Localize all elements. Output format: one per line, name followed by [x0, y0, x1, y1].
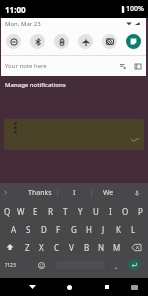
staticText: U: [93, 206, 99, 217]
button[interactable]: We: [92, 183, 125, 202]
staticText: H: [86, 224, 92, 235]
other: Notification settings: [135, 64, 141, 69]
staticText: Thanks: [28, 188, 52, 198]
staticText: T: [63, 206, 68, 217]
button[interactable]: Enter: [128, 259, 139, 270]
button[interactable]: More suggestions: [0, 183, 23, 202]
button[interactable]: ?123: [1, 256, 19, 274]
button[interactable]: X: [34, 238, 49, 256]
button[interactable]: H: [81, 220, 96, 238]
button[interactable]: Y: [73, 202, 88, 220]
button[interactable]: Your note here: [5, 56, 141, 76]
staticText: J: [102, 224, 105, 235]
button[interactable]: Do not disturb: [6, 34, 21, 49]
button[interactable]: Manage notifications: [0, 78, 148, 92]
staticText: Q: [4, 206, 11, 217]
staticText: S: [26, 224, 31, 235]
staticText: ?123: [5, 262, 16, 269]
staticText: Mon, Mar 23: [5, 20, 41, 28]
button[interactable]: Bluetooth: [30, 34, 45, 49]
staticText: .: [115, 260, 118, 271]
staticText: I: [73, 188, 76, 198]
staticText: M: [113, 242, 121, 253]
staticText: D: [41, 224, 47, 235]
staticText: F: [56, 224, 61, 235]
button[interactable]: S: [21, 220, 36, 238]
button[interactable]: Airplane mode: [78, 34, 93, 49]
other: Reply: [120, 63, 126, 69]
staticText: X: [39, 242, 44, 253]
button[interactable]: Thanks: [23, 183, 57, 202]
button[interactable]: Emoji: [33, 256, 49, 274]
button[interactable]: D: [36, 220, 51, 238]
button[interactable]: Hide keyboard: [22, 278, 42, 296]
staticText: G: [71, 224, 77, 235]
staticText: B: [84, 242, 90, 253]
button[interactable]: K: [111, 220, 126, 238]
button[interactable]: Home: [59, 278, 79, 296]
staticText: Z: [25, 242, 30, 253]
button[interactable]: N: [94, 238, 109, 256]
button[interactable]: G: [66, 220, 81, 238]
staticText: 11:00: [5, 4, 26, 15]
button[interactable]: C: [49, 238, 64, 256]
staticText: C: [54, 242, 60, 253]
staticText: We: [103, 188, 114, 198]
button[interactable]: Notes: [126, 34, 141, 49]
button[interactable]: Q: [0, 202, 14, 220]
staticText: P: [138, 206, 143, 217]
button[interactable]: Z: [20, 238, 34, 256]
button[interactable]: F: [51, 220, 66, 238]
button[interactable]: U: [88, 202, 103, 220]
button[interactable]: L: [126, 220, 141, 238]
button[interactable]: Backspace: [124, 238, 148, 256]
button[interactable]: Voice input: [125, 183, 148, 202]
staticText: 100%: [126, 4, 144, 14]
staticText: V: [69, 242, 74, 253]
button[interactable]: Battery saver: [54, 34, 69, 49]
staticText: E: [33, 206, 38, 217]
staticText: I: [109, 206, 112, 217]
button[interactable]: O: [118, 202, 133, 220]
button[interactable]: Cast screen: [102, 34, 117, 49]
button[interactable]: A: [7, 220, 21, 238]
staticText: Y: [78, 206, 83, 217]
button[interactable]: T: [58, 202, 73, 220]
staticText: W: [17, 206, 25, 217]
staticText: Manage notifications: [5, 81, 66, 89]
staticText: Your note here: [5, 62, 47, 70]
button[interactable]: I: [103, 202, 118, 220]
staticText: N: [98, 242, 105, 253]
button[interactable]: J: [96, 220, 111, 238]
button[interactable]: W: [14, 202, 28, 220]
staticText: A: [11, 224, 17, 235]
button[interactable]: Recents: [97, 278, 117, 296]
button[interactable]: .: [110, 256, 122, 274]
button[interactable]: R: [43, 202, 58, 220]
button[interactable]: M: [109, 238, 124, 256]
button[interactable]: P: [133, 202, 148, 220]
staticText: R: [48, 206, 53, 217]
button[interactable]: I: [58, 183, 91, 202]
button[interactable]: Shift: [0, 238, 20, 256]
button[interactable]: E: [28, 202, 43, 220]
staticText: K: [116, 224, 121, 235]
staticText: O: [122, 206, 129, 217]
button[interactable]: Switch keyboard: [124, 278, 144, 296]
button[interactable]: V: [64, 238, 79, 256]
staticText: L: [131, 224, 136, 235]
button[interactable]: B: [79, 238, 94, 256]
